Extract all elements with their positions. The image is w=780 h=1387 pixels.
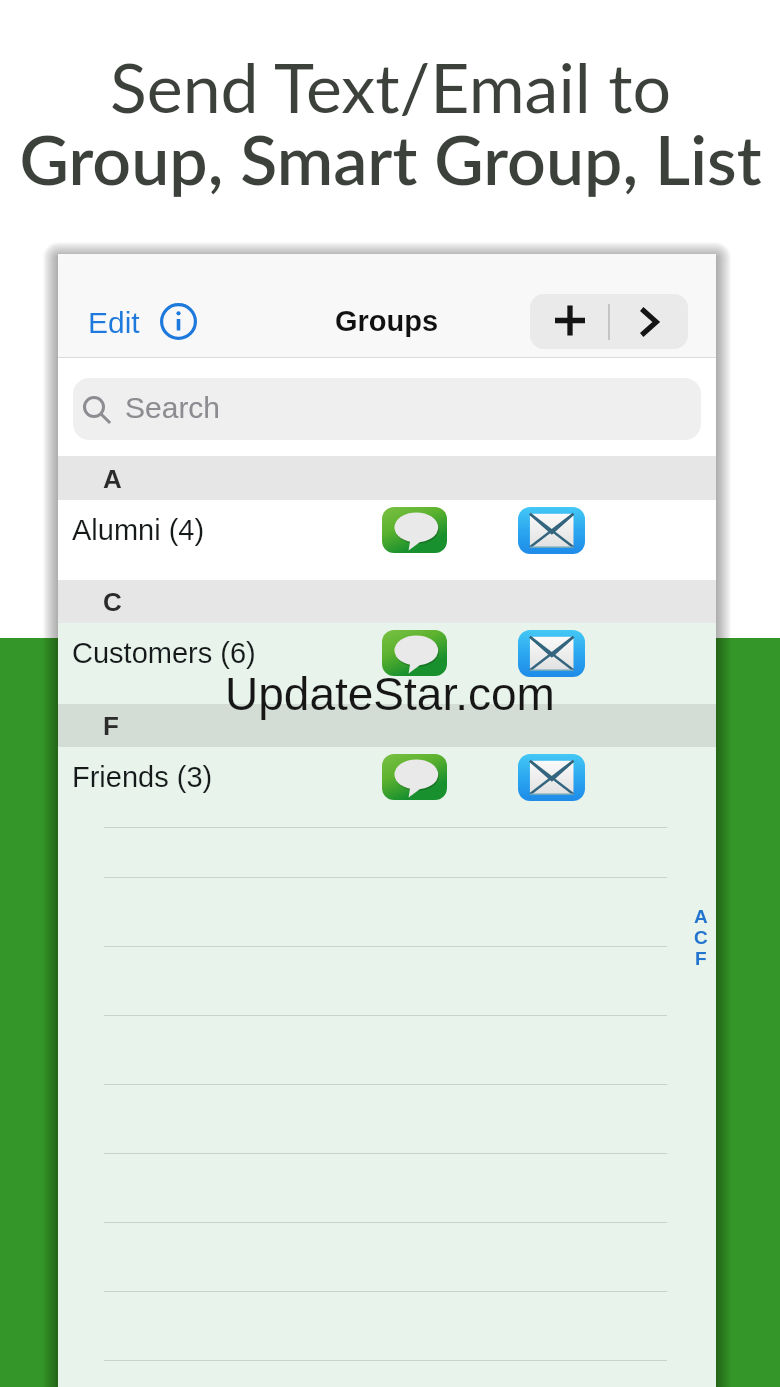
button[interactable]: Friends (3) <box>58 747 716 824</box>
staticText: A <box>694 906 708 927</box>
staticText: A <box>103 464 122 493</box>
button[interactable]: Send email <box>518 507 585 554</box>
button[interactable]: Customers (6) <box>58 623 716 704</box>
button[interactable]: F <box>695 948 707 969</box>
staticText: Group, Smart Group, List <box>19 118 762 200</box>
button[interactable]: Send text message <box>382 630 447 676</box>
button[interactable]: Info <box>155 298 201 344</box>
button[interactable]: Search <box>73 378 701 440</box>
staticText: F <box>103 711 119 740</box>
button[interactable]: Send text message <box>382 754 447 800</box>
button[interactable]: Send email <box>518 754 585 801</box>
staticText: UpdateStar.com <box>225 668 555 719</box>
staticText: Send Text/Email to <box>110 46 671 128</box>
button[interactable]: A <box>694 906 708 927</box>
staticText: Customers (6) <box>72 637 256 669</box>
button[interactable]: Add group <box>530 294 609 349</box>
staticText: Search <box>125 391 221 425</box>
staticText: Edit <box>88 306 140 340</box>
button[interactable]: C <box>694 927 708 948</box>
staticText: Groups <box>335 305 439 337</box>
button[interactable]: Next <box>609 294 688 349</box>
staticText: Friends (3) <box>72 761 213 793</box>
button[interactable]: Send text message <box>382 507 447 553</box>
staticText: C <box>694 927 708 948</box>
staticText: Alumni (4) <box>72 514 205 546</box>
button[interactable]: Edit <box>80 296 148 350</box>
button[interactable]: Alumni (4) <box>58 500 716 580</box>
staticText: F <box>695 948 707 969</box>
button[interactable]: Send email <box>518 630 585 677</box>
staticText: C <box>103 587 122 616</box>
